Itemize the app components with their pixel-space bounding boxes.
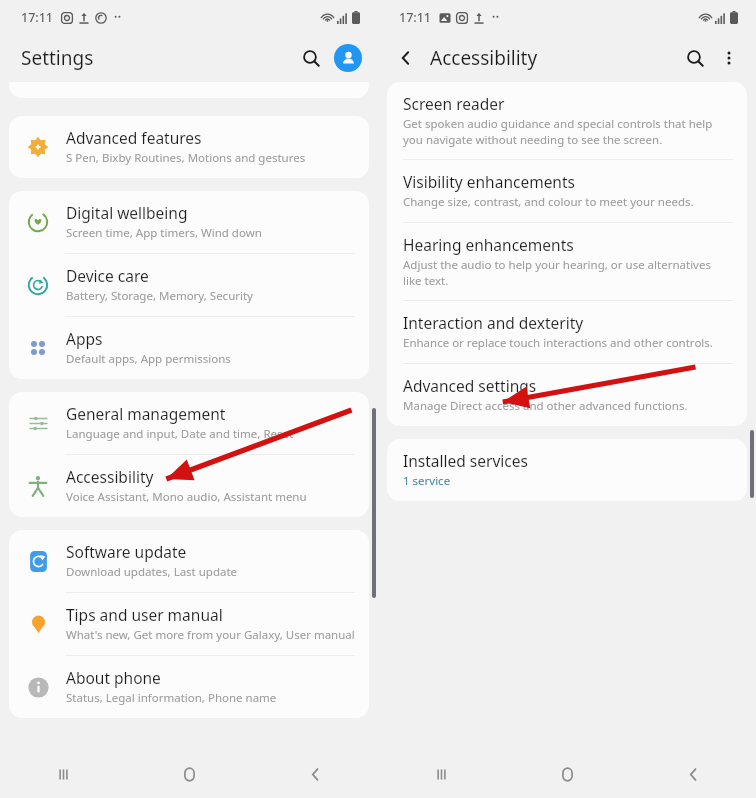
staticText: Adjust the audio to help your hearing, o… [403, 257, 729, 288]
button[interactable]: Advanced features [9, 116, 369, 178]
staticText: Accessibility [430, 45, 538, 71]
button[interactable]: More options [712, 41, 746, 75]
button[interactable]: Account [334, 44, 362, 72]
button[interactable]: Advanced settings [387, 364, 747, 426]
staticText: Default apps, App permissions [66, 351, 231, 367]
staticText: Get spoken audio guidance and special co… [403, 116, 729, 147]
staticText: Hearing enhancements [403, 234, 574, 255]
staticText: Voice Assistant, Mono audio, Assistant m… [66, 489, 307, 505]
staticText: S Pen, Bixby Routines, Motions and gestu… [66, 150, 306, 166]
button[interactable]: Home [126, 750, 252, 798]
staticText: Installed services [403, 450, 528, 471]
staticText: Advanced features [66, 127, 202, 148]
staticText: Apps [66, 328, 103, 349]
button[interactable]: Visibility enhancements [387, 160, 747, 222]
staticText: Download updates, Last update [66, 564, 238, 580]
button[interactable]: Apps [9, 317, 369, 379]
staticText: Manage Direct access and other advanced … [403, 398, 688, 414]
staticText: About phone [66, 667, 161, 688]
staticText: Enhance or replace touch interactions an… [403, 335, 713, 351]
staticText: 1 service [403, 473, 451, 489]
button[interactable]: Home [504, 750, 630, 798]
staticText: What's new, Get more from your Galaxy, U… [66, 627, 355, 643]
button[interactable]: General management [9, 392, 369, 454]
button[interactable]: Search [678, 41, 712, 75]
staticText: Device care [66, 265, 149, 286]
staticText: Advanced settings [403, 375, 537, 396]
button[interactable]: Interaction and dexterity [387, 301, 747, 363]
staticText: Change size, contrast, and colour to mee… [403, 194, 694, 210]
button[interactable]: Installed services [387, 439, 747, 501]
staticText: Screen time, App timers, Wind down [66, 225, 262, 241]
staticText: Language and input, Date and time, Reset [66, 426, 294, 442]
button[interactable]: Digital wellbeing [9, 191, 369, 253]
button[interactable]: Search [294, 41, 328, 75]
staticText: Settings [21, 45, 94, 71]
button[interactable]: Screen reader [387, 82, 747, 159]
staticText: 17:11 [399, 9, 432, 26]
staticText: Status, Legal information, Phone name [66, 690, 277, 706]
button[interactable]: Software update [9, 530, 369, 592]
staticText: General management [66, 403, 226, 424]
staticText: 17:11 [21, 9, 54, 26]
staticText: Accessibility [66, 466, 154, 487]
staticText: Tips and user manual [66, 604, 223, 625]
button[interactable]: About phone [9, 656, 369, 718]
button[interactable]: Hearing enhancements [387, 223, 747, 300]
staticText: Software update [66, 541, 187, 562]
button[interactable]: Tips and user manual [9, 593, 369, 655]
button[interactable]: Back [630, 750, 756, 798]
staticText: Screen reader [403, 93, 505, 114]
staticText: Visibility enhancements [403, 171, 575, 192]
button[interactable]: Recents [0, 750, 126, 798]
button[interactable]: Recents [378, 750, 504, 798]
button[interactable]: Navigate up [390, 42, 422, 74]
button[interactable]: Back [252, 750, 378, 798]
staticText: Battery, Storage, Memory, Security [66, 288, 253, 304]
button[interactable]: Device care [9, 254, 369, 316]
staticText: Digital wellbeing [66, 202, 188, 223]
staticText: Interaction and dexterity [403, 312, 584, 333]
button[interactable]: Accessibility [9, 455, 369, 517]
